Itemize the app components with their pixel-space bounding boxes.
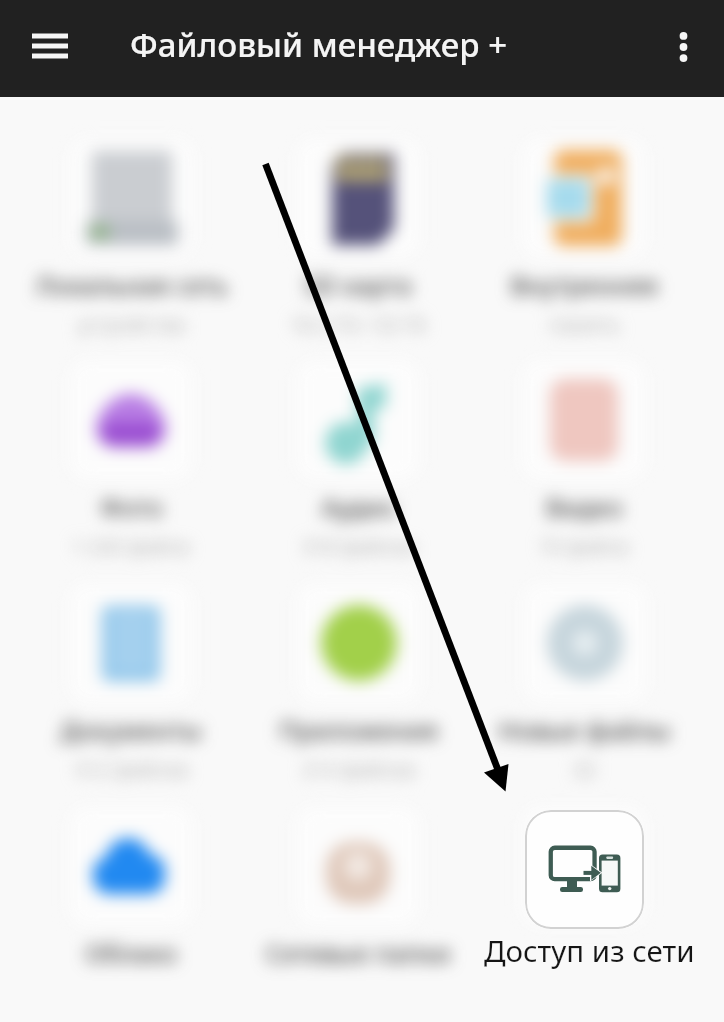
staticText: 214 файлов bbox=[302, 756, 415, 783]
staticText: память bbox=[549, 311, 620, 338]
button[interactable]: Новые файлы bbox=[473, 583, 695, 783]
staticText: Облако bbox=[85, 936, 177, 970]
staticText: 318 файлов bbox=[302, 533, 415, 560]
staticText: устройства bbox=[78, 311, 185, 338]
staticText: Видео bbox=[546, 490, 623, 524]
button[interactable]: More options bbox=[652, 16, 714, 78]
button[interactable]: Документы bbox=[20, 583, 242, 783]
staticText: Приложения bbox=[279, 713, 438, 747]
button[interactable]: Видео bbox=[473, 360, 695, 560]
button[interactable]: Локальная сеть bbox=[20, 138, 242, 338]
button[interactable]: Приложения bbox=[247, 583, 469, 783]
staticText: Аудио bbox=[321, 490, 396, 524]
button[interactable]: Сетевые папки bbox=[247, 806, 469, 1006]
button[interactable]: Облако bbox=[20, 806, 242, 1006]
button[interactable]: Фото bbox=[20, 360, 242, 560]
staticText: Сетевые папки bbox=[265, 936, 451, 970]
staticText: Документы bbox=[60, 713, 202, 747]
staticText: SD карта bbox=[304, 268, 412, 302]
button[interactable]: Внутренняя bbox=[473, 138, 695, 338]
staticText: Локальная сеть bbox=[35, 268, 228, 302]
staticText: Внутренняя bbox=[510, 268, 658, 302]
staticText: 512 файлов bbox=[75, 756, 188, 783]
button[interactable]: Доступ из сети bbox=[525, 810, 644, 929]
button[interactable]: Аудио bbox=[247, 360, 469, 560]
staticText: Доступ из сети bbox=[484, 930, 695, 970]
staticText: Файловый менеджер + bbox=[130, 22, 508, 67]
staticText: Новые файлы bbox=[498, 713, 671, 747]
button[interactable]: Open navigation menu bbox=[14, 7, 86, 79]
staticText: 74 файла bbox=[539, 533, 629, 560]
staticText: 1 243 файла bbox=[72, 533, 190, 560]
button[interactable] bbox=[473, 806, 695, 1006]
staticText: 18.2 ГБ / 32 ГБ bbox=[290, 311, 426, 338]
button[interactable]: SD карта bbox=[247, 138, 469, 338]
staticText: Фото bbox=[100, 490, 163, 524]
